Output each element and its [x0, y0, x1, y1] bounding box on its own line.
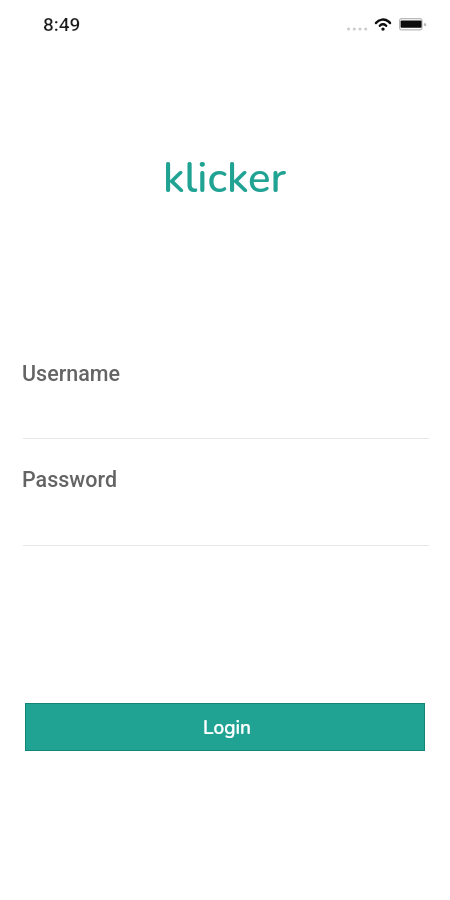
staticText: Login — [203, 715, 251, 741]
button[interactable]: Login — [25, 703, 425, 751]
staticText: Username — [22, 361, 121, 386]
staticText: 8:49 — [43, 13, 81, 35]
staticText: Password — [22, 467, 117, 492]
button[interactable]: Username — [22, 361, 428, 401]
staticText: klicker — [163, 150, 287, 207]
button[interactable]: Password — [22, 467, 428, 507]
